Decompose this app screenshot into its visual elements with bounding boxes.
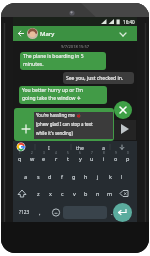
staticText: 16:40 [123,19,135,25]
staticText: m [107,190,113,197]
button[interactable] [63,72,134,84]
button[interactable]: d [44,171,56,182]
button[interactable]: e [38,153,50,164]
staticText: You better hurry up or I'm going take th… [22,87,84,101]
staticText: 9/7/2018 15:57 [61,44,89,49]
staticText: c [61,190,64,197]
staticText: d [48,173,52,180]
staticText: 3 [43,151,45,155]
button[interactable]: Mary [40,26,70,41]
button[interactable] [34,112,113,139]
button[interactable]: i [98,153,110,164]
staticText: w [30,155,35,162]
staticText: q [18,155,22,162]
staticText: t [67,155,69,162]
staticText: p [126,155,130,162]
button[interactable]: u [86,153,98,164]
staticText: k [109,173,112,180]
staticText: 8 [103,151,105,155]
button[interactable]: k [104,171,116,182]
button[interactable]: h [80,171,92,182]
staticText: l [121,173,123,180]
staticText: 4 [55,151,57,155]
button[interactable]: f [56,171,68,182]
button[interactable]: w [26,153,38,164]
button[interactable] [15,26,27,41]
button[interactable]: x [44,188,56,199]
button[interactable]: j [92,171,104,182]
staticText: 7 [91,151,93,155]
staticText: h [84,173,88,180]
button[interactable]: s [32,171,44,182]
button[interactable]: g [68,171,80,182]
button[interactable]: ?123 [14,206,34,219]
staticText: a [24,173,28,180]
button[interactable] [116,28,130,40]
button[interactable] [113,203,132,222]
button[interactable]: y [74,153,86,164]
staticText: v [73,190,76,197]
button[interactable]: a [95,141,111,153]
button[interactable]: z [32,188,44,199]
button[interactable]: a [20,171,32,182]
staticText: o [114,155,118,162]
staticText: u [90,155,94,162]
staticText: b [84,190,88,197]
button[interactable]: . [108,206,116,219]
staticText: 0 [127,151,129,155]
staticText: z [37,190,40,197]
staticText: 6 [79,151,81,155]
button[interactable]: b [80,188,92,199]
button[interactable] [115,188,131,199]
staticText: g [72,173,76,180]
button[interactable]: c [56,188,68,199]
button[interactable]: r [50,153,62,164]
staticText: e [42,155,46,162]
button[interactable] [19,86,107,104]
button[interactable]: o [110,153,122,164]
button[interactable] [15,188,29,199]
staticText: y [79,155,82,162]
staticText: i [103,155,105,162]
staticText: ?123 [19,209,30,216]
staticText: , [39,209,41,217]
button[interactable]: the [71,141,89,153]
staticText: f [61,173,63,180]
button[interactable]: v [68,188,80,199]
button[interactable] [114,120,136,140]
button[interactable]: q [14,153,26,164]
staticText: I [48,144,50,151]
staticText: 9 [115,151,117,155]
button[interactable]: , [35,206,45,219]
button[interactable]: t [62,153,74,164]
staticText: . [111,209,113,217]
staticText: The plane is boarding in 5 minutes. [23,53,84,67]
button[interactable] [27,28,38,39]
staticText: 1 [19,151,21,155]
staticText: a [102,144,105,151]
staticText: j [97,173,99,180]
button[interactable] [49,206,63,219]
button[interactable] [114,101,132,119]
button[interactable]: p [122,153,134,164]
staticText: the [76,144,85,151]
button[interactable] [20,52,106,70]
button[interactable] [17,120,35,138]
button[interactable]: n [92,188,104,199]
staticText: 5 [67,151,69,155]
staticText: r [55,155,58,162]
staticText: x [49,190,52,197]
button[interactable]: l [116,171,128,182]
button[interactable]: I [41,141,57,153]
staticText: 2 [31,151,33,155]
staticText: s [37,173,40,180]
staticText: See you, just checked in. [66,75,124,82]
staticText: You're hassling me 🐞 (phew glad I can st… [36,112,93,136]
button[interactable]: m [104,188,116,199]
staticText: Mary [40,30,55,38]
staticText: n [96,190,100,197]
